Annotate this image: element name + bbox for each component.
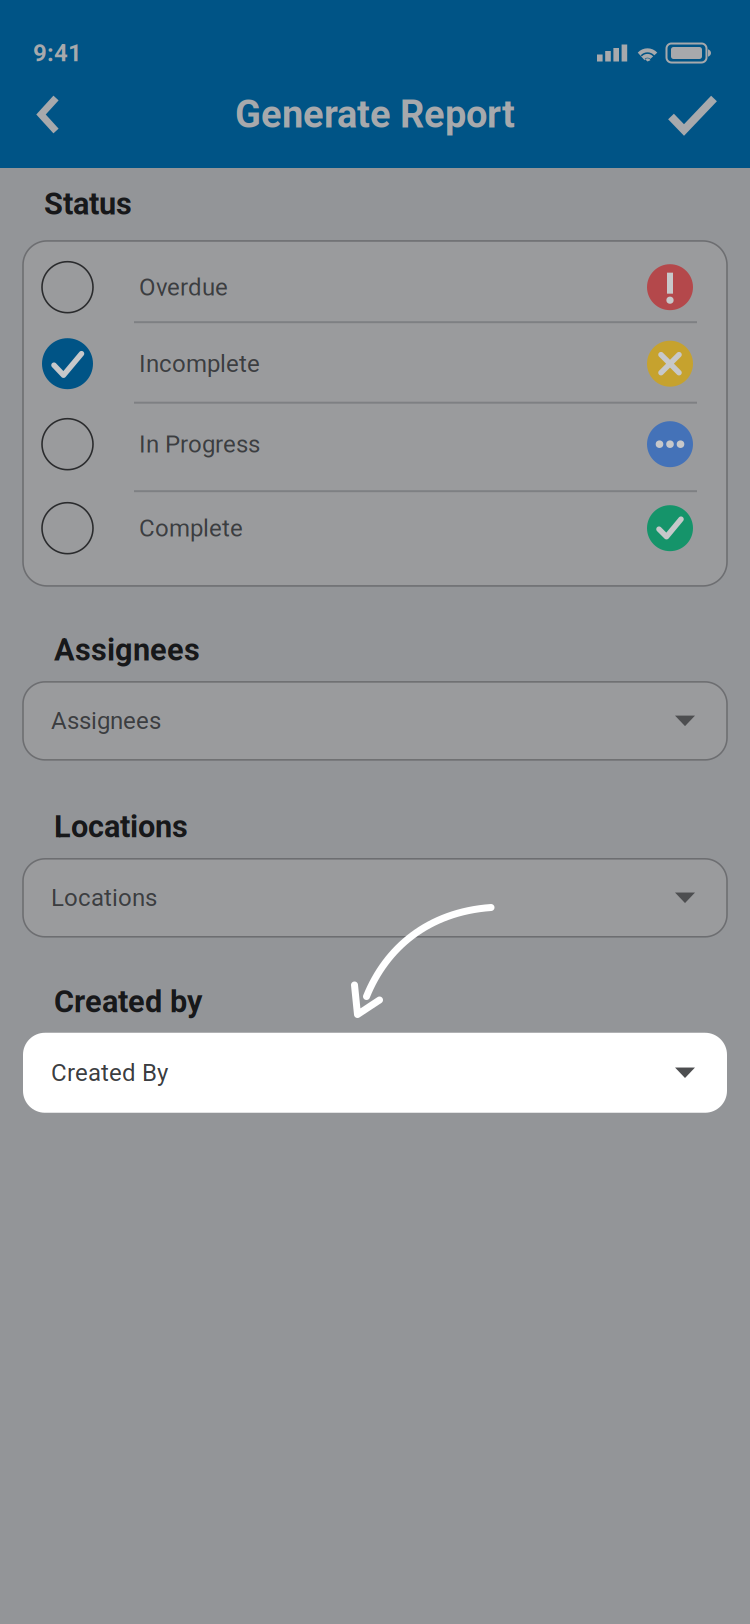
staticText: Locations bbox=[51, 884, 157, 912]
button[interactable]: Overdue bbox=[27, 241, 725, 323]
staticText: 9:41 bbox=[33, 39, 82, 67]
staticText: Locations bbox=[54, 809, 188, 845]
staticText: Status bbox=[44, 186, 132, 222]
staticText: Overdue bbox=[139, 273, 228, 301]
staticText: Created by bbox=[54, 984, 202, 1020]
button[interactable]: Complete bbox=[27, 492, 725, 586]
button[interactable]: Incomplete bbox=[27, 323, 725, 404]
staticText: Incomplete bbox=[139, 350, 260, 378]
staticText: In Progress bbox=[139, 430, 260, 458]
button[interactable]: Confirm bbox=[641, 80, 750, 149]
button[interactable]: Created By bbox=[23, 1033, 727, 1113]
staticText: Created By bbox=[51, 1059, 168, 1087]
staticText: Complete bbox=[139, 514, 243, 542]
staticText: Generate Report bbox=[235, 92, 515, 137]
staticText: Assignees bbox=[54, 632, 200, 668]
button[interactable]: In Progress bbox=[27, 404, 725, 492]
button[interactable]: Back bbox=[0, 80, 84, 149]
button[interactable]: Locations bbox=[23, 859, 727, 937]
staticText: Assignees bbox=[51, 707, 161, 735]
button[interactable]: Assignees bbox=[23, 682, 727, 760]
